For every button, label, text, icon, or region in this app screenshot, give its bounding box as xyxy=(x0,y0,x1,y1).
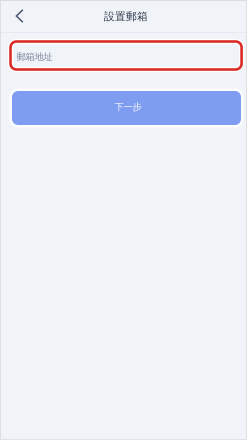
staticText: 設置郵箱 xyxy=(104,10,148,23)
button[interactable]: 下一步 xyxy=(10,89,243,127)
button[interactable]: Back xyxy=(0,0,33,32)
staticText: 郵箱地址 xyxy=(16,51,52,63)
staticText: 下一步 xyxy=(114,101,141,113)
button[interactable]: 郵箱地址 xyxy=(10,41,242,69)
